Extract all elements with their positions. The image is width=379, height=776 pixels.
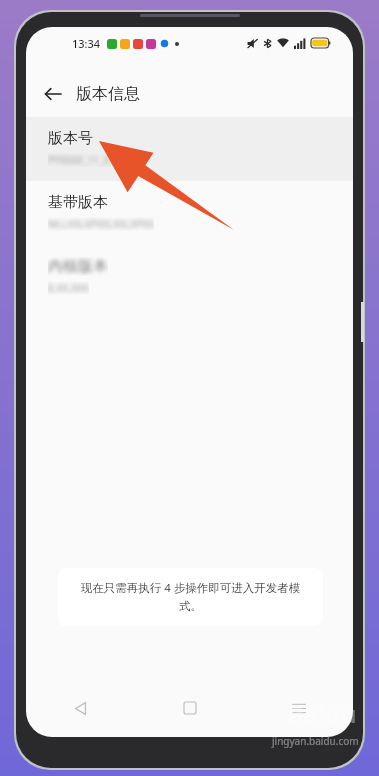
button[interactable]: Recents <box>244 687 353 729</box>
button[interactable]: Back <box>26 687 135 729</box>
staticText: X.XX.XXX <box>48 281 89 295</box>
button[interactable]: Home <box>135 687 244 729</box>
staticText: Baidu <box>288 697 357 730</box>
button[interactable]: Back <box>36 77 70 111</box>
button[interactable]: 版本号 <box>26 117 353 181</box>
staticText: 版本信息 <box>76 84 140 104</box>
staticText: 现在只需再执行 4 步操作即可进入开发者模式。 <box>74 580 307 614</box>
staticText: jingyan.baidu.com <box>272 734 359 748</box>
staticText: PYXXXX_11_X.X.X <box>48 153 127 167</box>
staticText: 内核版本 <box>48 257 108 276</box>
button[interactable]: 内核版本 <box>26 245 353 309</box>
staticText: 13:34 <box>72 36 101 51</box>
staticText: 基带版本 <box>48 193 108 212</box>
staticText: 版本号 <box>48 129 93 148</box>
button[interactable]: 基带版本 <box>26 181 353 245</box>
staticText: MLLXXLXPXXLXXLXPXX <box>48 217 154 231</box>
